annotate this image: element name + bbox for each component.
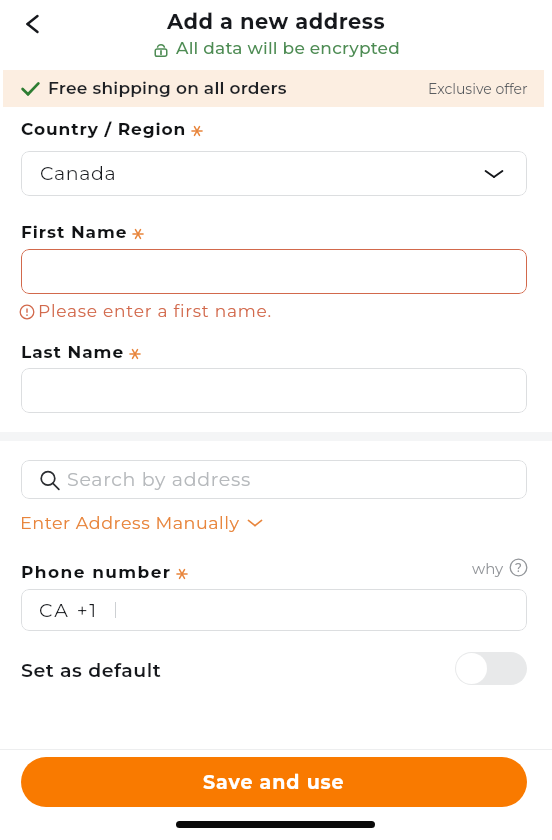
staticText: Canada xyxy=(40,162,117,185)
staticText: Search by address xyxy=(67,468,251,491)
staticText: Add a new address xyxy=(167,9,386,35)
button[interactable]: Why we need your phone number xyxy=(0,558,528,577)
button[interactable]: Canada xyxy=(21,151,527,196)
button[interactable]: Search by address xyxy=(21,460,527,499)
staticText: Country / Region xyxy=(21,119,187,140)
staticText: Last Name xyxy=(21,342,125,363)
staticText: Free shipping on all orders xyxy=(48,78,287,99)
staticText: CA +1 xyxy=(39,599,99,622)
staticText: ? xyxy=(515,560,522,575)
button[interactable] xyxy=(21,368,527,413)
staticText: Save and use xyxy=(203,771,345,794)
staticText: Exclusive offer xyxy=(428,80,528,97)
staticText: Phone number xyxy=(21,562,172,583)
staticText: Set as default xyxy=(21,659,162,682)
button[interactable]: Enter Address Manually xyxy=(20,512,263,533)
button[interactable]: CA +1 xyxy=(21,589,527,631)
button[interactable]: Set as default xyxy=(455,652,527,685)
button[interactable] xyxy=(21,249,527,294)
staticText: Please enter a first name. xyxy=(38,301,272,322)
staticText: Enter Address Manually xyxy=(20,512,240,533)
staticText: why xyxy=(472,559,504,577)
staticText: All data will be encrypted xyxy=(176,38,400,59)
button[interactable]: Back xyxy=(15,8,47,40)
button[interactable]: Save and use xyxy=(21,757,527,807)
staticText: First Name xyxy=(21,222,128,243)
